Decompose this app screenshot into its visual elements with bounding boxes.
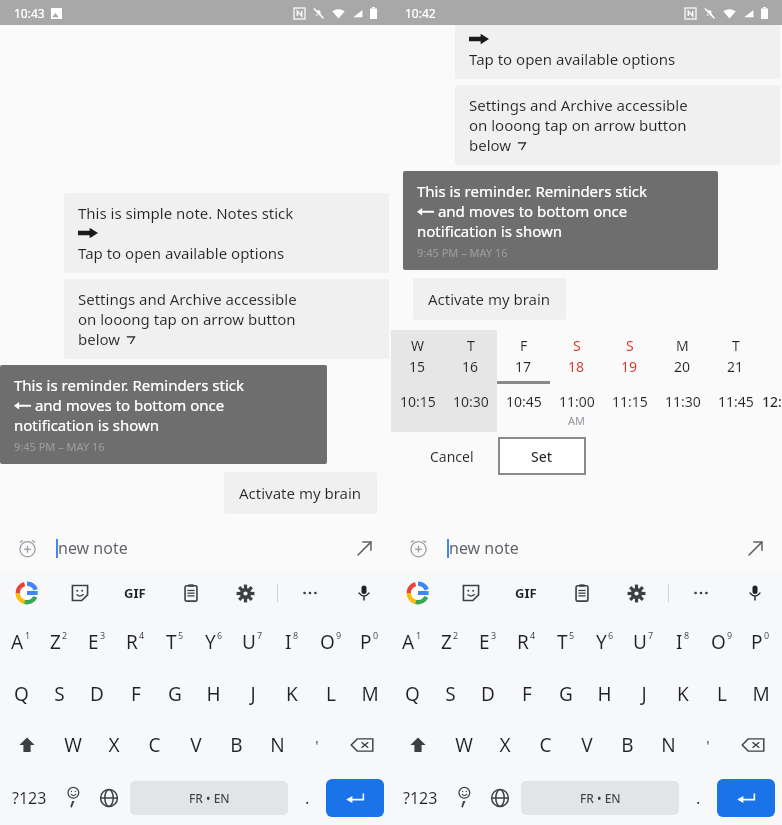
button[interactable]: A (2, 614, 40, 669)
button[interactable]: Backspace (335, 719, 389, 771)
button[interactable]: L (702, 669, 741, 719)
button[interactable]: T (709, 330, 762, 384)
button[interactable]: G (155, 669, 194, 719)
button[interactable]: K (272, 669, 311, 719)
button[interactable]: FR • EN (130, 781, 288, 815)
button[interactable]: . (291, 771, 323, 825)
button[interactable]: Send note (740, 533, 770, 563)
button[interactable]: This is simple note. Notes stick (64, 193, 389, 273)
button[interactable]: ' (689, 719, 726, 771)
button[interactable]: Backspace (726, 719, 780, 771)
button[interactable]: L (311, 669, 350, 719)
button[interactable]: F (497, 330, 550, 384)
button[interactable]: D (78, 669, 116, 719)
button[interactable]: ?123 (395, 771, 446, 825)
button[interactable]: Cancel (405, 437, 499, 475)
button[interactable]: GIF (118, 576, 152, 610)
button[interactable]: Send note (349, 533, 379, 563)
button[interactable]: N (648, 719, 689, 771)
button[interactable]: M (350, 669, 389, 719)
button[interactable]: Set (499, 438, 585, 474)
button[interactable]: 11:30 (656, 384, 709, 432)
button[interactable]: Y (585, 614, 624, 669)
button[interactable]: S (431, 669, 469, 719)
button[interactable]: B (216, 719, 257, 771)
button[interactable]: X (484, 719, 525, 771)
button[interactable]: More options (686, 578, 716, 608)
button[interactable]: P (350, 614, 389, 669)
button[interactable]: E (78, 614, 116, 669)
button[interactable]: Stickers (456, 578, 486, 608)
button[interactable]: H (194, 669, 233, 719)
button[interactable]: Settings and Archive accessible (64, 279, 389, 359)
button[interactable]: Z (431, 614, 469, 669)
button[interactable]: Shift (393, 719, 443, 771)
button[interactable]: Add reminder (12, 533, 42, 563)
button[interactable]: Shift (2, 719, 52, 771)
button[interactable]: G (546, 669, 585, 719)
button[interactable]: P (741, 614, 780, 669)
button[interactable]: Google (403, 578, 433, 608)
button[interactable]: Tap to open available options (455, 25, 780, 79)
button[interactable]: O (311, 614, 350, 669)
button[interactable]: S (603, 330, 656, 384)
button[interactable]: F (507, 669, 546, 719)
button[interactable]: R (507, 614, 546, 669)
button[interactable]: 11:15 (603, 384, 656, 432)
button[interactable]: Activate my brain (413, 278, 566, 320)
button[interactable]: J (624, 669, 663, 719)
button[interactable]: 10:30 (444, 384, 497, 432)
button[interactable]: I (272, 614, 311, 669)
button[interactable]: GIF (509, 576, 543, 610)
button[interactable]: U (233, 614, 272, 669)
button[interactable]: Voice input (349, 578, 379, 608)
button[interactable]: F (116, 669, 155, 719)
button[interactable]: S (40, 669, 78, 719)
button[interactable]: Settings and Archive accessible (455, 85, 780, 165)
button[interactable]: ?123 (4, 771, 55, 825)
button[interactable]: J (233, 669, 272, 719)
button[interactable]: V (175, 719, 216, 771)
button[interactable]: K (663, 669, 702, 719)
button[interactable]: H (585, 669, 624, 719)
button[interactable]: M (656, 330, 709, 384)
button[interactable]: Activate my brain (224, 472, 377, 514)
button[interactable]: Change language (91, 771, 127, 825)
button[interactable]: E (469, 614, 507, 669)
button[interactable]: T (546, 614, 585, 669)
button[interactable]: W (391, 330, 444, 384)
button[interactable]: Emoji and comma (55, 771, 91, 825)
button[interactable]: Q (393, 669, 431, 719)
button[interactable]: 12: (762, 384, 782, 432)
button[interactable]: X (93, 719, 134, 771)
button[interactable]: Google (12, 578, 42, 608)
button[interactable]: V (566, 719, 607, 771)
button[interactable]: R (116, 614, 155, 669)
button[interactable]: Add reminder (403, 533, 433, 563)
button[interactable]: 10:45 (497, 384, 550, 432)
button[interactable]: Settings (230, 578, 260, 608)
button[interactable]: I (663, 614, 702, 669)
button[interactable]: 11:45 (709, 384, 762, 432)
button[interactable]: A (393, 614, 431, 669)
button[interactable]: This is reminder. Reminders stick (0, 365, 327, 464)
button[interactable]: U (624, 614, 663, 669)
button[interactable]: . (682, 771, 714, 825)
button[interactable]: Clipboard (567, 578, 597, 608)
button[interactable]: Enter (717, 779, 775, 817)
button[interactable]: N (257, 719, 298, 771)
button[interactable]: O (702, 614, 741, 669)
button[interactable]: W (52, 719, 93, 771)
button[interactable]: ' (298, 719, 335, 771)
button[interactable]: More options (295, 578, 325, 608)
button[interactable]: C (525, 719, 566, 771)
button[interactable]: T (444, 330, 497, 384)
button[interactable]: C (134, 719, 175, 771)
button[interactable]: This is reminder. Reminders stick (403, 171, 718, 270)
button[interactable]: S (550, 330, 603, 384)
button[interactable]: Emoji and comma (446, 771, 482, 825)
button[interactable]: Change language (482, 771, 518, 825)
button[interactable]: Q (2, 669, 40, 719)
button[interactable]: Enter (326, 779, 384, 817)
button[interactable]: 11:00 (550, 384, 603, 432)
